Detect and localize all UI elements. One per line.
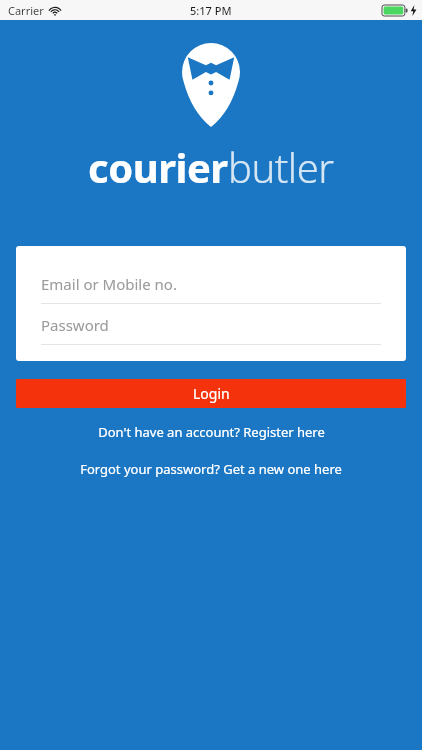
staticText: 5:17 PM (190, 3, 232, 18)
button[interactable]: Forgot your password? Get a new one here (0, 460, 422, 478)
button[interactable]: Email or Mobile no. (41, 265, 381, 304)
staticText: Forgot your password? Get a new one here (80, 460, 342, 478)
button[interactable]: Login (16, 379, 406, 408)
staticText: Carrier (8, 3, 44, 18)
staticText: Login (193, 384, 230, 403)
button[interactable]: Password (41, 306, 381, 345)
staticText: Password (41, 315, 109, 335)
staticText: Don't have an account? Register here (98, 423, 325, 441)
staticText: courier (88, 140, 228, 194)
staticText: butler (228, 140, 334, 194)
staticText: Email or Mobile no. (41, 274, 177, 294)
button[interactable]: Don't have an account? Register here (0, 423, 422, 441)
